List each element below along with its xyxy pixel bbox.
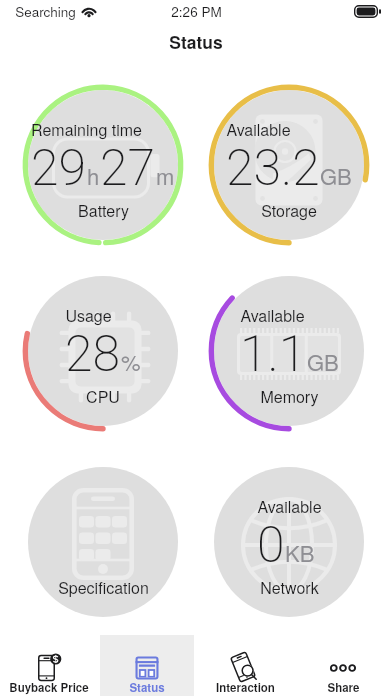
button[interactable]: Buyback Price <box>2 635 96 696</box>
staticText: m <box>156 160 175 192</box>
staticText: Available <box>240 304 305 327</box>
staticText: 28 <box>65 325 121 384</box>
staticText: Memory <box>260 385 319 408</box>
staticText: GB <box>307 346 339 378</box>
button[interactable]: Battery <box>28 90 178 240</box>
staticText: Available <box>226 118 291 141</box>
button[interactable]: Storage <box>214 90 364 240</box>
button[interactable]: CPU <box>28 276 178 426</box>
button[interactable]: Memory <box>214 276 364 426</box>
staticText: 23.2 <box>226 139 320 198</box>
button[interactable]: Network <box>214 467 364 617</box>
staticText: Status <box>129 679 165 695</box>
staticText: Specification <box>58 576 149 599</box>
button[interactable]: Status <box>100 635 194 696</box>
staticText: GB <box>320 160 352 192</box>
staticText: Usage <box>65 304 112 327</box>
staticText: 1.1 <box>240 325 307 384</box>
staticText: 0 <box>257 516 285 575</box>
staticText: Searching <box>15 2 76 21</box>
staticText: Storage <box>261 199 317 222</box>
staticText: Buyback Price <box>9 679 89 695</box>
staticText: Share <box>327 679 360 695</box>
staticText: Remaining time <box>31 118 142 141</box>
staticText: 27 <box>100 139 156 198</box>
staticText: Battery <box>78 199 129 222</box>
staticText: 29 <box>31 139 87 198</box>
staticText: 2:26 PM <box>171 2 222 21</box>
staticText: Interaction <box>216 679 275 695</box>
staticText: CPU <box>86 385 120 408</box>
button[interactable]: Share <box>296 635 390 696</box>
staticText: Status <box>169 29 223 54</box>
staticText: Available <box>257 495 322 518</box>
staticText: % <box>121 346 141 378</box>
staticText: KB <box>285 537 315 569</box>
staticText: h <box>87 160 100 192</box>
button[interactable]: Interaction <box>198 635 292 696</box>
staticText: Network <box>260 576 319 599</box>
button[interactable]: Specification <box>28 467 178 617</box>
